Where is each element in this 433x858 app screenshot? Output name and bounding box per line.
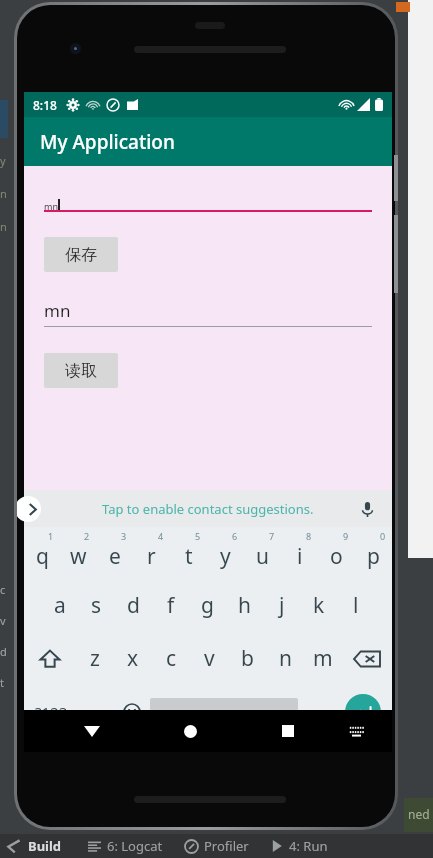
- staticText: x: [127, 644, 139, 673]
- button[interactable]: z: [75, 632, 114, 685]
- staticText: d: [0, 644, 7, 659]
- button[interactable]: b: [228, 632, 266, 685]
- staticText: j: [279, 591, 285, 620]
- staticText: n: [0, 186, 7, 201]
- staticText: o: [330, 542, 343, 571]
- staticText: p: [367, 542, 380, 571]
- staticText: v: [0, 613, 6, 628]
- button[interactable]: d: [115, 579, 152, 632]
- button[interactable]: k: [300, 579, 337, 632]
- staticText: 5: [195, 530, 201, 542]
- button[interactable]: r: [133, 527, 170, 579]
- staticText: n: [279, 644, 292, 673]
- staticText: i: [297, 542, 303, 571]
- button[interactable]: Voice input: [356, 498, 378, 520]
- other: Space: [150, 698, 298, 725]
- button[interactable]: m: [304, 632, 342, 685]
- staticText: 4: [158, 530, 164, 542]
- button[interactable]: Tap to enable contact suggestions.: [102, 500, 314, 518]
- button[interactable]: mn: [44, 188, 372, 212]
- button[interactable]: p: [355, 527, 392, 579]
- staticText: 保存: [65, 245, 97, 265]
- button[interactable]: g: [189, 579, 226, 632]
- staticText: d: [127, 591, 140, 620]
- staticText: ?123: [35, 702, 68, 722]
- button[interactable]: Back: [72, 711, 112, 751]
- staticText: n: [0, 219, 7, 234]
- staticText: z: [90, 644, 100, 673]
- button[interactable]: ,: [78, 685, 114, 738]
- staticText: mn: [44, 200, 58, 212]
- button[interactable]: e: [96, 527, 133, 579]
- staticText: f: [167, 591, 175, 620]
- staticText: ,: [93, 695, 99, 721]
- staticText: Build: [28, 837, 62, 855]
- staticText: 8:18: [33, 97, 57, 113]
- button[interactable]: .: [298, 685, 334, 738]
- staticText: w: [70, 542, 87, 571]
- button[interactable]: x: [114, 632, 152, 685]
- staticText: 3: [121, 530, 127, 542]
- staticText: a: [54, 591, 66, 620]
- button[interactable]: [345, 694, 381, 730]
- staticText: t: [185, 542, 193, 571]
- button[interactable]: o: [318, 527, 355, 579]
- staticText: k: [313, 591, 325, 620]
- staticText: u: [256, 542, 269, 571]
- button[interactable]: q: [24, 527, 60, 579]
- button[interactable]: t: [170, 527, 207, 579]
- staticText: 2: [84, 530, 90, 542]
- staticText: mn: [44, 299, 71, 322]
- staticText: v: [204, 644, 215, 673]
- button[interactable]: [150, 698, 298, 725]
- button[interactable]: Switch keyboard: [339, 714, 373, 748]
- button[interactable]: f: [152, 579, 189, 632]
- button[interactable]: v: [190, 632, 228, 685]
- button[interactable]: Home: [170, 711, 210, 751]
- button[interactable]: 保存: [44, 237, 118, 272]
- staticText: m: [313, 644, 333, 673]
- button[interactable]: l: [337, 579, 374, 632]
- staticText: c: [0, 582, 6, 597]
- staticText: Profiler: [204, 837, 249, 855]
- staticText: 8: [306, 530, 312, 542]
- staticText: g: [201, 591, 214, 620]
- staticText: t: [0, 675, 4, 690]
- staticText: 7: [269, 530, 275, 542]
- staticText: y: [0, 153, 6, 168]
- button[interactable]: h: [226, 579, 263, 632]
- button[interactable]: Shift: [24, 632, 75, 685]
- staticText: 6: Logcat: [107, 837, 163, 855]
- staticText: 0: [380, 530, 386, 542]
- button[interactable]: n: [266, 632, 304, 685]
- button[interactable]: Backspace: [342, 632, 392, 685]
- button[interactable]: 读取: [44, 353, 118, 388]
- button[interactable]: w: [60, 527, 96, 579]
- staticText: s: [91, 591, 102, 620]
- staticText: My Application: [40, 129, 175, 155]
- button[interactable]: c: [152, 632, 190, 685]
- button[interactable]: j: [263, 579, 300, 632]
- staticText: y: [220, 542, 231, 571]
- staticText: ned: [408, 806, 430, 822]
- staticText: 1: [48, 530, 54, 542]
- button[interactable]: s: [78, 579, 115, 632]
- button[interactable]: y: [207, 527, 244, 579]
- staticText: e: [109, 542, 121, 571]
- staticText: .: [313, 695, 319, 721]
- button[interactable]: a: [41, 579, 78, 632]
- staticText: b: [241, 644, 254, 673]
- button[interactable]: mn: [44, 299, 372, 327]
- button[interactable]: Recents: [268, 711, 308, 751]
- button[interactable]: ?123: [24, 685, 78, 738]
- staticText: q: [36, 542, 49, 571]
- button[interactable]: u: [244, 527, 281, 579]
- button[interactable]: Emoji: [114, 685, 150, 738]
- button[interactable]: Expand suggestions: [17, 496, 41, 522]
- button[interactable]: i: [281, 527, 318, 579]
- other: Enter: [334, 685, 392, 738]
- staticText: h: [238, 591, 251, 620]
- staticText: 9: [343, 530, 349, 542]
- staticText: 4: Run: [289, 837, 328, 855]
